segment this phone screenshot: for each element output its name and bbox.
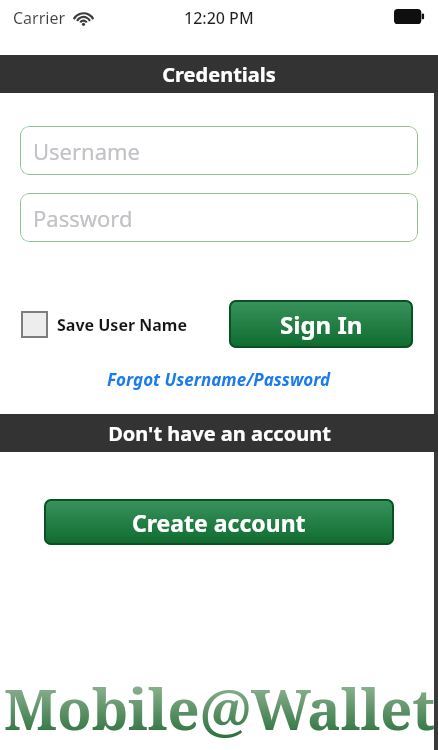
button[interactable]: Save User Name [21,311,187,338]
staticText: Mobile@Wallet [4,670,435,746]
staticText: Sign In [280,308,363,341]
staticText: Create account [132,507,306,538]
staticText: Save User Name [57,314,187,336]
button[interactable]: Sign In [229,300,413,348]
staticText: Credentials [162,61,276,88]
staticText: Carrier [13,7,66,29]
staticText: 12:20 PM [184,7,254,29]
staticText: Password [33,203,133,233]
button[interactable]: Password [20,193,418,242]
button[interactable]: Forgot Username/Password [0,368,438,391]
staticText: Username [33,136,141,166]
button[interactable]: Username [20,126,418,175]
button[interactable]: Create account [44,499,394,545]
staticText: Don't have an account [108,420,331,447]
staticText: Forgot Username/Password [107,368,331,391]
